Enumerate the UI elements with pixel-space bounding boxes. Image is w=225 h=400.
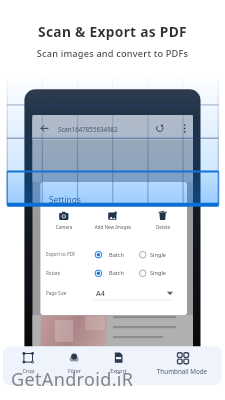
button[interactable] [138,207,187,231]
button[interactable] [89,207,138,231]
staticText: Thumbnail Mode [142,367,222,376]
staticText: Scan images and convert to PDFs [0,47,225,60]
staticText: Single [150,251,167,259]
button[interactable] [93,248,138,261]
button[interactable] [40,207,89,231]
staticText: Crop [13,367,44,374]
button[interactable] [96,346,141,385]
button[interactable] [93,285,181,300]
button[interactable]: More options [178,120,191,137]
staticText: Page Size [46,290,67,296]
button[interactable] [138,267,183,280]
staticText: Rotate [46,270,61,276]
staticText: Settings [49,194,81,205]
staticText: Batch [109,251,124,259]
staticText: Single [150,269,167,277]
staticText: A4 [96,288,105,298]
staticText: Scan & Export as PDF [0,22,225,41]
staticText: Add New Images [88,224,138,230]
staticText: Delete [143,224,183,230]
button[interactable] [93,267,138,280]
button[interactable]: Rotate page [153,120,167,137]
button[interactable] [3,346,53,385]
staticText: Export [103,367,134,374]
button[interactable] [141,346,222,385]
staticText: Scan1647855634982 [58,125,118,133]
staticText: Camera [44,224,84,230]
staticText: Filter [59,367,90,374]
staticText: Batch [109,269,124,277]
button[interactable] [138,248,183,261]
button[interactable]: Back [38,120,52,137]
staticText: Export to PDF [46,251,76,257]
staticText: GetAndroid.iR [11,367,134,392]
button[interactable] [53,346,96,385]
